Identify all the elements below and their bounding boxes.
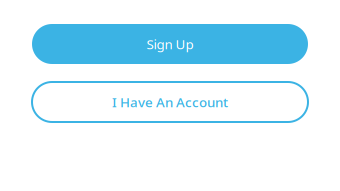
button[interactable]: Sign Up (32, 24, 308, 64)
staticText: Sign Up (146, 35, 193, 53)
button[interactable]: I Have An Account (32, 82, 308, 122)
staticText: I Have An Account (112, 93, 228, 111)
